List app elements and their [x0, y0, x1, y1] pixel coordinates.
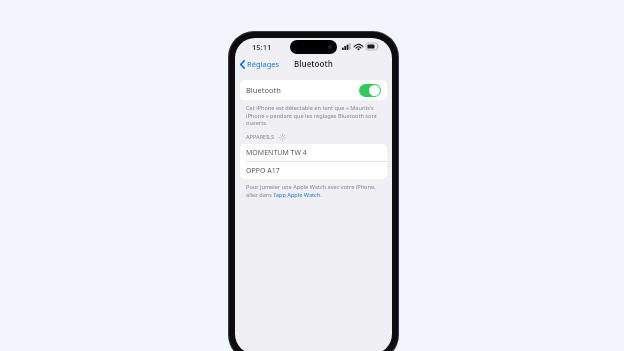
staticText: APPAREILS: [246, 133, 275, 141]
staticText: OPPO A17: [246, 166, 280, 176]
staticText: MOMENTUM TW 4: [246, 148, 307, 158]
staticText: Bluetooth: [294, 58, 333, 69]
staticText: Cet iPhone est détectable en tant que « …: [246, 104, 383, 126]
button[interactable]: OPPO A17: [240, 162, 387, 179]
button[interactable]: Pour jumeler une Apple Watch avec votre …: [246, 183, 383, 198]
staticText: Bluetooth: [246, 85, 281, 95]
button[interactable]: MOMENTUM TW 4: [240, 144, 387, 161]
button[interactable]: Réglages: [235, 57, 284, 71]
staticText: Réglages: [247, 59, 280, 69]
button[interactable]: Bluetooth toggle, on: [359, 84, 381, 97]
staticText: 15:11: [252, 42, 272, 52]
button[interactable]: Bluetooth: [240, 80, 387, 100]
